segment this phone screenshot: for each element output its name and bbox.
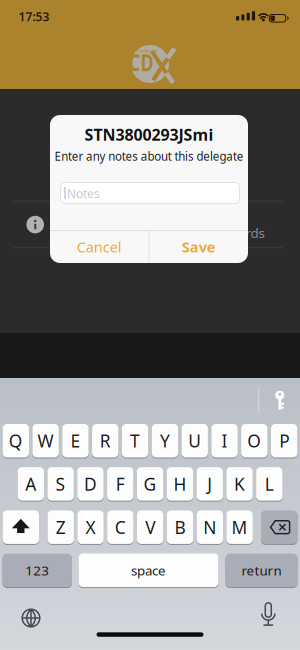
staticText: R [100,429,111,452]
button[interactable]: Passwords [270,384,290,410]
staticText: Z [56,516,66,539]
staticText: I [221,429,227,452]
button[interactable]: M [226,510,253,544]
staticText: H [173,472,186,495]
button[interactable]: P [271,424,297,457]
button[interactable]: Dictate [256,601,280,627]
button[interactable]: Cancel [50,231,148,263]
staticText: Save [182,237,216,257]
button[interactable]: G [137,467,163,501]
staticText: K [234,472,245,495]
staticText: O [247,429,261,452]
button[interactable]: space [78,553,218,587]
button[interactable]: return [225,553,297,587]
button[interactable]: Z [47,510,74,544]
staticText: CD [125,47,157,77]
staticText: W [38,429,54,452]
staticText: J [207,472,212,495]
button[interactable]: E [62,424,89,457]
staticText: V [145,516,155,539]
button[interactable]: Y [152,424,178,457]
staticText: G [144,472,157,495]
staticText: STN3800293JSmi [84,124,213,145]
button[interactable]: N [197,510,223,544]
staticText: U [188,429,201,452]
staticText: 17:53 [18,8,49,24]
button[interactable]: Shift [3,510,39,544]
staticText: F [116,472,125,495]
button[interactable]: Next keyboard [21,608,41,628]
button[interactable]: L [256,467,283,501]
button[interactable]: W [32,424,59,457]
button[interactable]: H [167,467,193,501]
staticText: 123 [25,561,49,579]
button[interactable]: D [77,467,104,501]
staticText: N [203,516,216,539]
button[interactable]: R [92,424,118,457]
button[interactable]: V [137,510,163,544]
staticText: Awards [219,224,264,242]
button[interactable]: More info [26,216,44,233]
staticText: X [85,516,95,539]
button[interactable]: I [211,424,238,457]
button[interactable]: A [18,467,44,501]
button[interactable]: T [122,424,148,457]
button[interactable]: C [107,510,133,544]
staticText: Y [160,429,170,452]
staticText: space [131,561,166,579]
staticText: Cancel [77,237,122,257]
button[interactable]: Delete [261,510,297,544]
staticText: B [174,516,185,539]
staticText: A [25,472,36,495]
button[interactable]: F [107,467,133,501]
button[interactable]: K [226,467,253,501]
staticText: CarDealer [114,42,181,59]
staticText: return [241,561,281,579]
staticText: C [115,516,126,539]
staticText: Notes [67,185,100,201]
button[interactable]: U [181,424,208,457]
button[interactable]: Notes [60,182,240,204]
staticText: T [130,429,140,452]
button[interactable]: X [77,510,104,544]
staticText: Q [9,429,23,452]
staticText: P [279,429,289,452]
button[interactable]: 123 [3,553,72,587]
staticText: E [70,429,80,452]
staticText: Enter any notes about this delegate [50,148,247,164]
staticText: S [56,472,66,495]
button[interactable]: S [47,467,74,501]
button[interactable]: Save [150,231,248,263]
staticText: L [265,472,274,495]
staticText: D [84,472,97,495]
button[interactable]: B [167,510,193,544]
button[interactable]: Q [3,424,29,457]
button[interactable]: J [196,467,223,501]
staticText: M [232,516,248,539]
button[interactable]: O [241,424,268,457]
